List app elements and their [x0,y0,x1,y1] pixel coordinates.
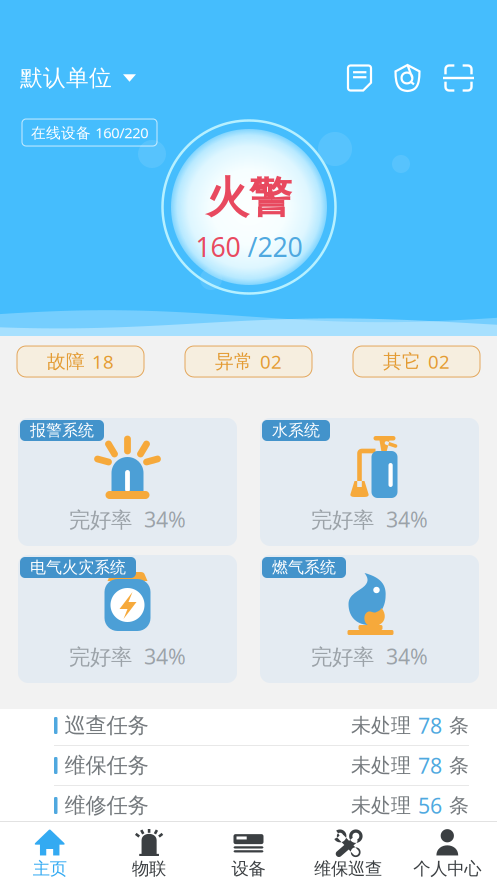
staticText: 个人中心 [413,858,481,879]
staticText: 燃气系统 [272,558,336,577]
staticText: 物联 [132,858,166,879]
staticText: 完好率 34% [311,642,428,670]
staticText: 02 [428,349,450,374]
staticText: 完好率 34% [311,505,428,533]
staticText: 未处理 [351,753,411,778]
staticText: 火警 [206,172,292,224]
button[interactable]: 完好率 34% [18,418,237,546]
staticText: 异常 [215,350,253,373]
button[interactable]: 主页 [0,821,99,883]
button[interactable]: 个人中心 [398,821,497,883]
staticText: 条 [449,753,469,778]
staticText: 条 [449,793,469,818]
staticText: 默认单位 [20,64,112,92]
staticText: 其它 [383,350,421,373]
staticText: 78 [418,711,442,740]
button[interactable]: 完好率 34% [18,555,237,683]
staticText: 主页 [33,858,67,879]
staticText: 未处理 [351,713,411,738]
button[interactable]: 异常 [185,346,312,377]
staticText: 巡查任务 [64,712,148,739]
button[interactable]: Inspection [389,58,426,97]
button[interactable]: 故障 [17,346,144,377]
staticText: 故障 [47,350,85,373]
button[interactable]: 物联 [99,821,199,883]
staticText: 160 [195,229,240,264]
staticText: 维修任务 [64,792,148,819]
staticText: 报警系统 [30,421,94,440]
staticText: 条 [449,713,469,738]
button[interactable]: 默认单位 [18,61,138,95]
staticText: 78 [418,751,442,780]
staticText: 水系统 [272,421,320,440]
staticText: 完好率 34% [69,505,186,533]
staticText: 维保任务 [64,752,148,779]
button[interactable]: 完好率 34% [260,418,479,546]
button[interactable]: 设备 [199,821,298,883]
staticText: 设备 [231,858,265,879]
button[interactable]: 维保巡查 [298,821,398,883]
staticText: 完好率 34% [69,642,186,670]
staticText: 56 [418,791,442,820]
button[interactable]: 维修任务 [0,786,497,825]
button[interactable]: 其它 [353,346,480,377]
staticText: 未处理 [351,793,411,818]
button[interactable]: Reports [342,58,377,97]
staticText: 维保巡查 [314,858,382,879]
button[interactable]: 巡查任务 [0,706,497,745]
staticText: /220 [240,229,302,264]
staticText: 电气火灾系统 [30,558,126,577]
staticText: 18 [92,349,114,374]
staticText: 02 [260,349,282,374]
staticText: 在线设备 160/220 [31,123,148,142]
button[interactable]: Scan [438,58,479,98]
button[interactable]: 完好率 34% [260,555,479,683]
button[interactable]: 维保任务 [0,746,497,785]
